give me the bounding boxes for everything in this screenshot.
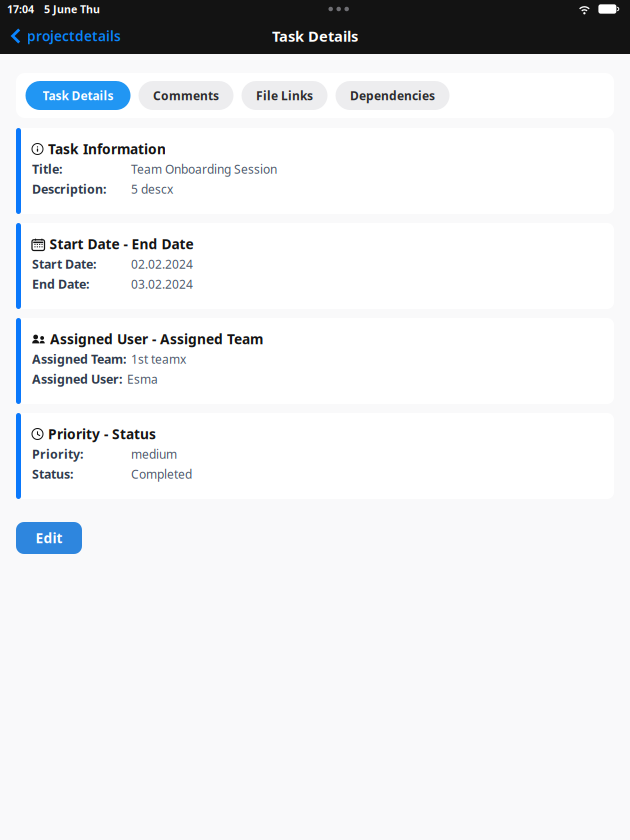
staticText: 03.02.2024 xyxy=(131,276,193,292)
staticText: Task Information xyxy=(48,140,166,158)
staticText: Assigned Team: xyxy=(32,351,126,367)
button[interactable]: File Links xyxy=(241,81,327,110)
staticText: Priority: xyxy=(32,446,83,462)
staticText: End Date: xyxy=(32,276,89,292)
button[interactable]: Dependencies xyxy=(335,81,449,110)
staticText: File Links xyxy=(256,87,313,104)
staticText: Start Date: xyxy=(32,256,96,272)
staticText: Task Details xyxy=(272,26,358,46)
staticText: Start Date - End Date xyxy=(49,235,193,253)
staticText: 02.02.2024 xyxy=(131,256,193,272)
staticText: medium xyxy=(131,446,177,462)
button[interactable]: Edit xyxy=(16,522,82,554)
button[interactable]: Comments xyxy=(138,81,233,110)
staticText: Assigned User: xyxy=(32,371,122,387)
staticText: Description: xyxy=(32,181,106,197)
button[interactable]: Task Details xyxy=(25,81,130,110)
staticText: 1st teamx xyxy=(131,351,186,367)
button[interactable]: projectdetails xyxy=(0,22,131,50)
staticText: 5 descx xyxy=(131,181,173,197)
staticText: Title: xyxy=(32,161,62,177)
staticText: projectdetails xyxy=(27,27,121,45)
staticText: Task Details xyxy=(42,87,113,104)
staticText: 17:04 xyxy=(7,2,34,16)
staticText: 5 June Thu xyxy=(44,2,100,16)
staticText: Completed xyxy=(131,466,192,482)
staticText: Assigned User - Assigned Team xyxy=(50,330,263,348)
staticText: Comments xyxy=(153,87,219,104)
staticText: Team Onboarding Session xyxy=(131,161,277,177)
staticText: Edit xyxy=(35,529,62,547)
staticText: Esma xyxy=(127,371,158,387)
staticText: Dependencies xyxy=(350,87,435,104)
staticText: Status: xyxy=(32,466,73,482)
staticText: Priority - Status xyxy=(48,425,156,443)
